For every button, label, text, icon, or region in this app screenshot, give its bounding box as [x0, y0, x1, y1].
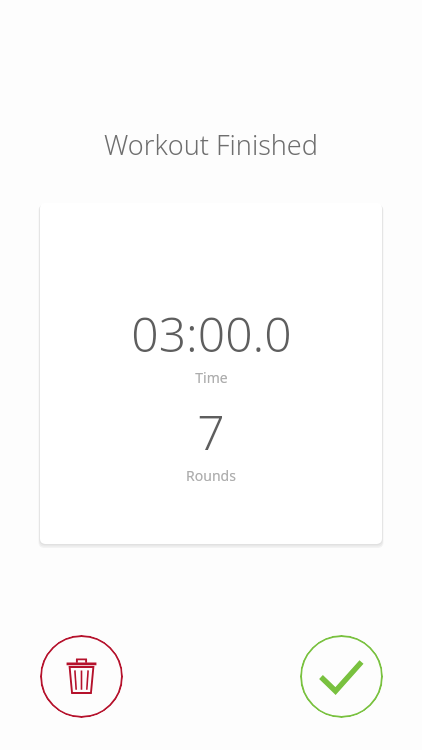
staticText: Time	[195, 368, 228, 387]
staticText: 7	[197, 399, 225, 464]
staticText: 03:00.0	[131, 301, 292, 366]
staticText: Workout Finished	[0, 126, 422, 163]
staticText: Rounds	[186, 466, 236, 485]
button[interactable]: Discard workout	[40, 635, 123, 718]
button[interactable]: Save workout	[300, 635, 383, 718]
